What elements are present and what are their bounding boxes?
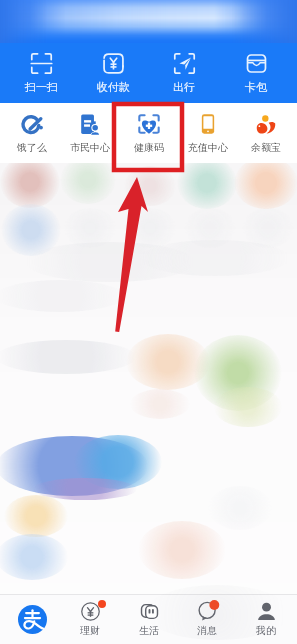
staticText: 健康码 [134,141,164,154]
button[interactable]: 卡包 [225,43,287,103]
staticText: 理财 [80,624,100,637]
button[interactable]: 理财 [63,595,117,644]
button[interactable]: 余额宝 [238,103,293,163]
staticText: 生活 [139,624,159,637]
staticText: 饿了么 [17,141,47,154]
button[interactable]: 饿了么 [4,103,59,163]
staticText: 充值中心 [188,141,228,154]
button[interactable]: 健康码 [121,103,176,163]
button[interactable]: 扫一扫 [10,43,72,103]
staticText: 收付款 [97,80,130,94]
button[interactable]: 收付款 [82,43,144,103]
button[interactable]: 支付宝 首页 [5,595,59,644]
staticText: 市民中心 [70,141,110,154]
button[interactable]: 出行 [153,43,215,103]
staticText: 出行 [173,80,195,94]
button[interactable]: 生活 [122,595,176,644]
staticText: 卡包 [245,80,267,94]
staticText: 扫一扫 [25,80,58,94]
button[interactable]: 消息 [180,595,234,644]
button[interactable]: 市民中心 [62,103,117,163]
staticText: 我的 [256,624,276,637]
staticText: 消息 [197,624,217,637]
button[interactable]: 我的 [239,595,293,644]
staticText: 余额宝 [251,141,281,154]
button[interactable]: 充值中心 [180,103,235,163]
